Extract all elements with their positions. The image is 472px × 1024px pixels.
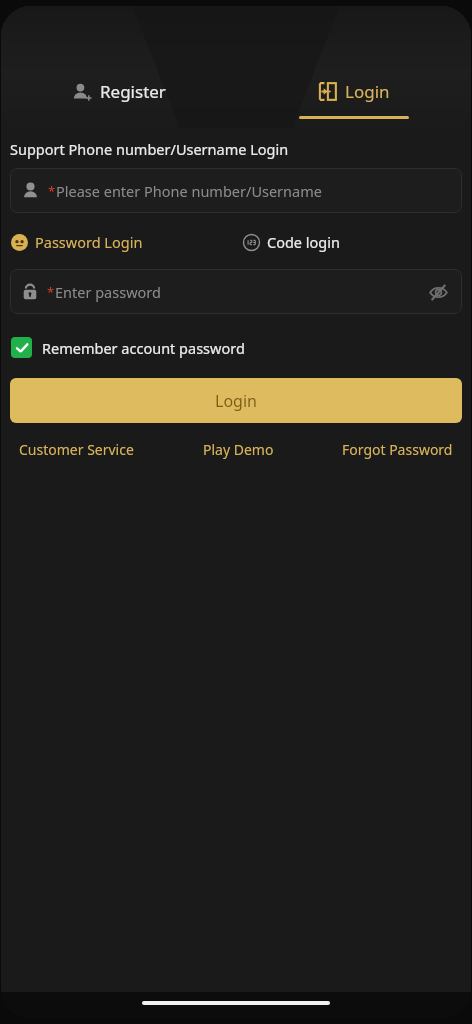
button[interactable]: Login <box>236 70 471 128</box>
staticText: Forgot Password <box>342 440 453 459</box>
staticText: Remember account password <box>42 338 245 358</box>
button[interactable]: Forgot Password <box>340 437 455 462</box>
button[interactable]: Remember account password <box>10 335 246 360</box>
staticText: Play Demo <box>203 440 274 459</box>
staticText: * <box>47 283 55 301</box>
staticText: Code login <box>267 232 340 252</box>
staticText: Enter password <box>55 282 161 302</box>
button[interactable]: Register <box>1 70 236 128</box>
staticText: Login <box>345 80 390 103</box>
button[interactable]: Play Demo <box>201 437 276 462</box>
button[interactable]: Password Login <box>10 229 144 255</box>
staticText: Please enter Phone number/Username <box>56 181 322 201</box>
staticText: Support Phone number/Username Login <box>10 139 289 159</box>
button[interactable]: * <box>10 168 462 213</box>
staticText: Register <box>100 80 166 103</box>
staticText: * <box>48 182 56 200</box>
staticText: Login <box>215 390 257 412</box>
staticText: Password Login <box>35 232 143 252</box>
button[interactable]: Show password <box>426 280 450 304</box>
button[interactable]: Login <box>10 378 462 423</box>
staticText: Customer Service <box>19 440 134 459</box>
button[interactable]: Customer Service <box>17 437 136 462</box>
button[interactable]: * <box>10 269 462 314</box>
button[interactable]: Code login <box>242 229 341 255</box>
